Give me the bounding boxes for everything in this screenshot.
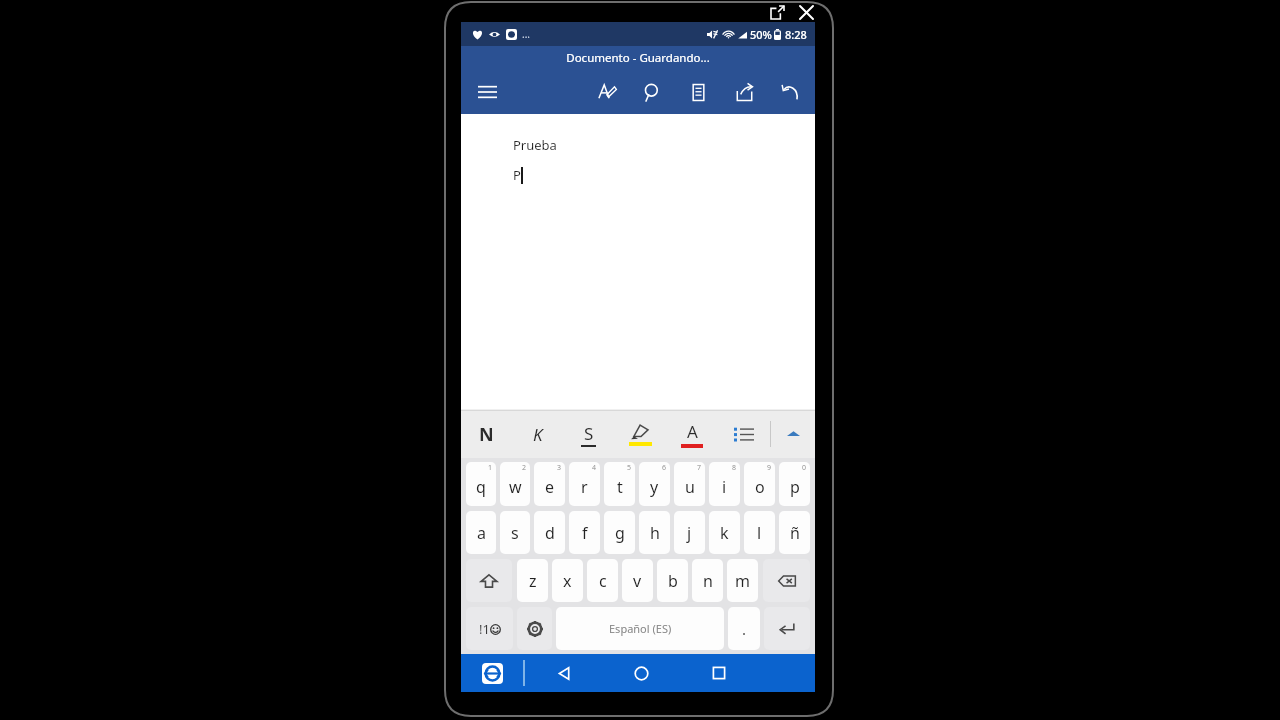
staticText: m [735, 570, 750, 592]
staticText: 0 [802, 463, 807, 473]
button[interactable]: z [517, 559, 548, 602]
staticText: u [685, 476, 695, 498]
staticText: A [687, 420, 698, 443]
staticText: 4 [592, 463, 597, 473]
staticText: 8 [732, 463, 737, 473]
staticText: d [545, 522, 555, 544]
button[interactable]: Undo [775, 77, 805, 107]
staticText: !1 [479, 620, 490, 638]
button[interactable]: Pop out [766, 1, 788, 23]
staticText: 6 [662, 463, 667, 473]
button[interactable]: 9 [744, 462, 775, 506]
button[interactable]: Italic [512, 410, 563, 458]
staticText: p [790, 476, 800, 498]
button[interactable]: ñ [779, 511, 810, 554]
staticText: v [633, 570, 642, 592]
staticText: 1 [488, 463, 493, 473]
staticText: h [650, 522, 660, 544]
button[interactable]: g [604, 511, 635, 554]
button[interactable]: 3 [534, 462, 565, 506]
button[interactable]: x [552, 559, 583, 602]
button[interactable]: Collapse [771, 410, 815, 458]
button[interactable]: Font color [666, 410, 718, 458]
button[interactable]: Back [525, 654, 603, 692]
staticText: . [742, 619, 747, 639]
staticText: y [650, 476, 659, 498]
staticText: 2 [522, 463, 527, 473]
button[interactable]: Enter [764, 607, 810, 650]
staticText: N [479, 422, 494, 447]
staticText: t [617, 476, 623, 498]
button[interactable]: 5 [604, 462, 635, 506]
button[interactable]: Period [728, 607, 760, 650]
staticText: a [477, 522, 486, 544]
staticText: x [563, 570, 572, 592]
button[interactable]: k [709, 511, 740, 554]
button[interactable]: Document view [683, 77, 713, 107]
button[interactable]: Shift [466, 559, 512, 602]
staticText: c [599, 570, 607, 592]
button[interactable]: s [500, 511, 530, 554]
button[interactable]: 7 [674, 462, 705, 506]
staticText: e [545, 476, 555, 498]
button[interactable]: v [622, 559, 653, 602]
button[interactable]: a [466, 511, 496, 554]
button[interactable]: j [674, 511, 705, 554]
button[interactable]: Search [637, 77, 667, 107]
staticText: g [615, 522, 625, 544]
button[interactable]: d [534, 511, 565, 554]
button[interactable]: c [587, 559, 618, 602]
button[interactable]: Ink [591, 77, 621, 107]
button[interactable]: Close [794, 0, 818, 24]
staticText: i [722, 476, 727, 498]
staticText: 7 [697, 463, 702, 473]
staticText: j [687, 522, 692, 544]
button[interactable]: Bold [461, 410, 512, 458]
button[interactable]: h [639, 511, 670, 554]
staticText: z [529, 570, 537, 592]
button[interactable]: b [657, 559, 688, 602]
staticText: n [703, 570, 713, 592]
button[interactable]: 0 [779, 462, 810, 506]
staticText: w [509, 476, 522, 498]
staticText: Documento - Guardando... [566, 50, 710, 66]
button[interactable]: Space [556, 607, 724, 650]
staticText: s [511, 522, 519, 544]
staticText: ... [522, 27, 531, 41]
button[interactable]: l [744, 511, 775, 554]
button[interactable]: Highlight [614, 410, 666, 458]
staticText: K [533, 423, 543, 446]
staticText: 5 [627, 463, 632, 473]
button[interactable]: Settings [517, 607, 552, 650]
button[interactable]: Backspace [763, 559, 810, 602]
button[interactable]: 8 [709, 462, 740, 506]
staticText: ñ [790, 522, 800, 544]
staticText: 50% [750, 27, 772, 42]
staticText: l [757, 522, 762, 544]
button[interactable]: Home [603, 654, 680, 692]
staticText: S [584, 422, 594, 445]
button[interactable]: Underline [563, 410, 614, 458]
button[interactable]: n [692, 559, 723, 602]
staticText: P [513, 166, 521, 184]
button[interactable]: 1 [466, 462, 496, 506]
button[interactable]: Share [729, 77, 759, 107]
button[interactable]: f [569, 511, 600, 554]
staticText: b [668, 570, 678, 592]
staticText: o [755, 476, 765, 498]
button[interactable]: m [727, 559, 758, 602]
button[interactable]: Bulleted list [718, 410, 770, 458]
staticText: q [476, 476, 486, 498]
button[interactable]: TeamViewer [461, 654, 523, 692]
staticText: 8:28 [785, 27, 807, 42]
button[interactable]: 4 [569, 462, 600, 506]
staticText: f [582, 522, 588, 544]
button[interactable]: Recents [680, 654, 757, 692]
staticText: Prueba [513, 136, 557, 154]
button[interactable]: Menu [471, 76, 503, 108]
staticText: k [720, 522, 729, 544]
staticText: 3 [557, 463, 562, 473]
button[interactable]: 6 [639, 462, 670, 506]
button[interactable]: 2 [500, 462, 530, 506]
button[interactable]: Symbols [466, 607, 513, 650]
